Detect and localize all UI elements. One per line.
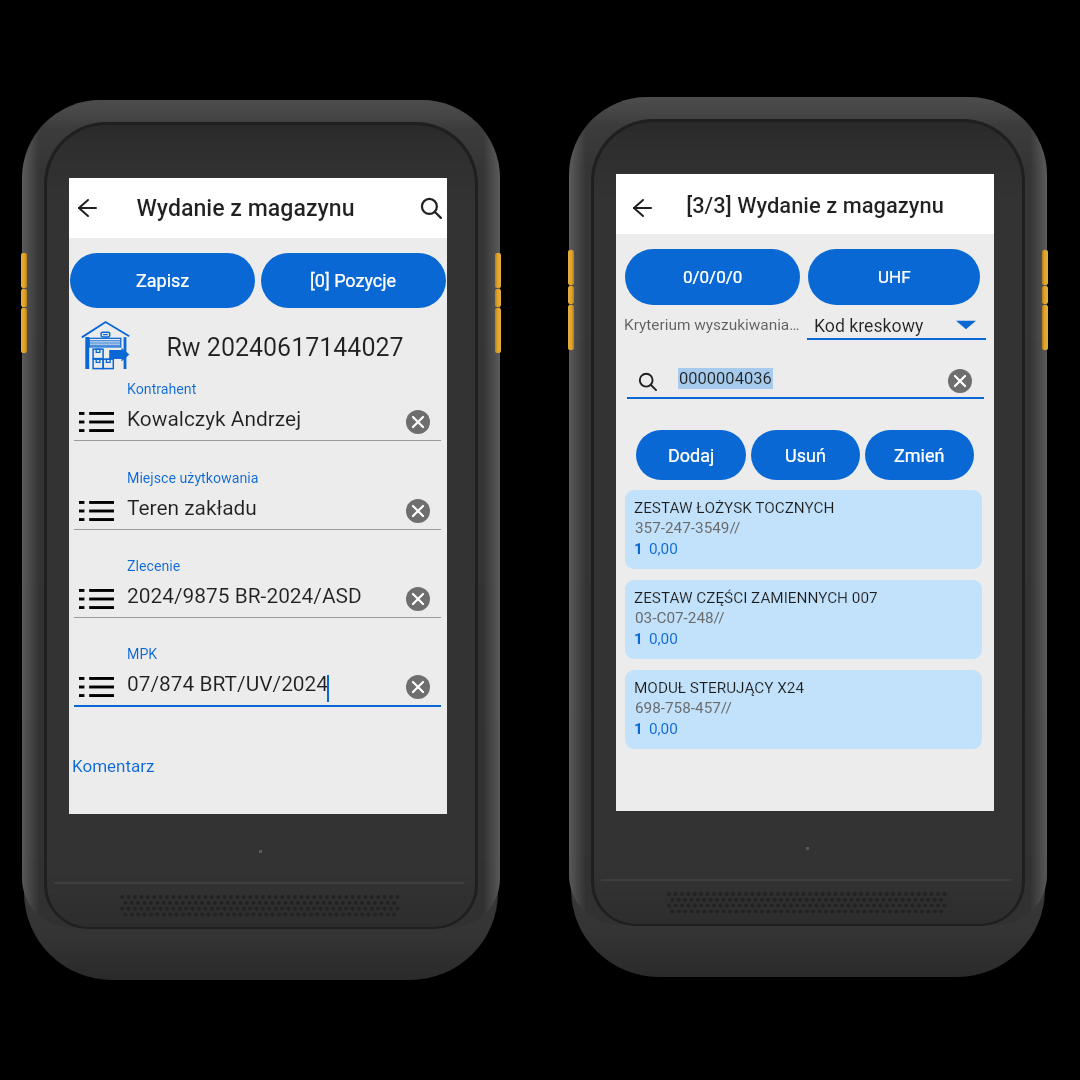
staticText: 03-C07-248// — [635, 609, 725, 627]
staticText: MODUŁ STERUJĄCY X24 — [634, 679, 805, 697]
staticText: Zmień — [894, 445, 945, 466]
staticText: Dodaj — [668, 445, 715, 466]
button[interactable]: MPK — [126, 646, 159, 663]
button[interactable]: UHF — [808, 249, 980, 305]
staticText: 357-247-3549// — [635, 519, 741, 537]
button[interactable]: Back — [617, 183, 667, 233]
button[interactable]: Clear — [406, 675, 430, 699]
staticText: Zapisz — [136, 270, 190, 291]
button[interactable]: Search — [411, 188, 451, 228]
button[interactable]: Usuń — [751, 430, 860, 480]
staticText: 698-758-457// — [635, 699, 732, 717]
button[interactable]: Dodaj — [636, 430, 746, 480]
staticText: 07/874 BRT/UV/2024 — [127, 672, 329, 696]
button[interactable]: Miejsce użytkowania — [126, 470, 260, 487]
button[interactable]: Zlecenie — [126, 558, 182, 575]
staticText: 2024/9875 BR-2024/ASD — [127, 584, 362, 608]
staticText: 1 — [634, 540, 643, 558]
button[interactable]: Back — [62, 183, 112, 233]
button[interactable]: Clear — [406, 410, 430, 434]
button[interactable]: Kontrahent — [126, 381, 198, 398]
staticText: 1 — [634, 720, 643, 738]
staticText: Rw 20240617144027 — [135, 333, 435, 362]
button[interactable]: Komentarz — [70, 756, 157, 776]
button[interactable]: Clear — [406, 587, 430, 611]
button[interactable]: Clear — [946, 367, 974, 395]
staticText: ZESTAW ŁOŻYSK TOCZNYCH — [634, 499, 835, 517]
staticText: Wydanie z magazynu — [73, 195, 418, 222]
button[interactable]: 0/0/0/0 — [625, 249, 800, 305]
button[interactable]: Zmień — [865, 430, 974, 480]
button[interactable]: ZESTAW ŁOŻYSK TOCZNYCH — [625, 490, 982, 569]
button[interactable]: [0] Pozycje — [261, 253, 446, 308]
staticText: 0,00 — [649, 630, 678, 648]
staticText: ZESTAW CZĘŚCI ZAMIENNYCH 007 — [634, 589, 878, 607]
button[interactable]: Kod kreskowy — [813, 316, 925, 337]
staticText: 1 — [634, 630, 643, 648]
staticText: 0,00 — [649, 720, 678, 738]
staticText: Kowalczyk Andrzej — [127, 407, 302, 431]
staticText: Teren zakładu — [127, 496, 257, 520]
staticText: 0,00 — [649, 540, 678, 558]
staticText: 0/0/0/0 — [683, 267, 743, 287]
staticText: Kryterium wyszukiwania… — [624, 316, 800, 334]
button[interactable]: ZESTAW CZĘŚCI ZAMIENNYCH 007 — [625, 580, 982, 659]
button[interactable]: MODUŁ STERUJĄCY X24 — [625, 670, 982, 749]
button[interactable]: Zapisz — [70, 253, 255, 308]
staticText: [0] Pozycje — [310, 270, 397, 291]
button[interactable]: Dropdown — [956, 318, 976, 330]
staticText: 0000004036 — [679, 369, 772, 388]
staticText: [3/3] Wydanie z magazynu — [626, 193, 1004, 219]
button[interactable]: Clear — [406, 499, 430, 523]
staticText: Usuń — [785, 445, 826, 466]
staticText: UHF — [878, 267, 911, 287]
button[interactable]: Search — [630, 364, 666, 400]
